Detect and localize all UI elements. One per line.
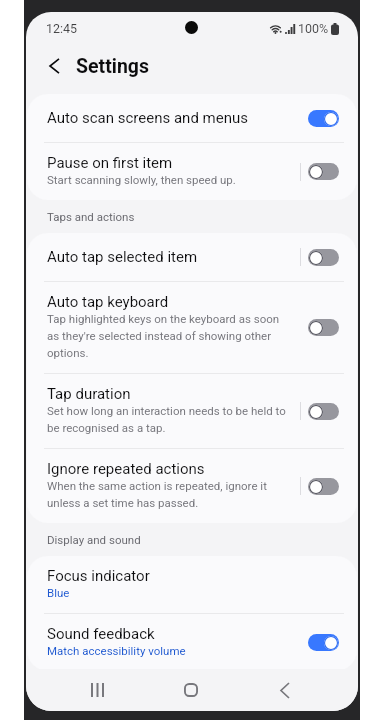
button[interactable]: Off: [308, 319, 339, 336]
button[interactable]: Off: [308, 478, 339, 495]
button[interactable]: Recent apps: [76, 669, 120, 711]
staticText: Tap highlighted keys on the keyboard as …: [47, 310, 288, 361]
button[interactable]: Off: [308, 403, 339, 420]
staticText: Ignore repeated actions: [47, 461, 205, 477]
staticText: Pause on first item: [47, 155, 173, 171]
staticText: Start scanning slowly, then speed up.: [47, 171, 236, 188]
staticText: Set how long an interaction needs to be …: [47, 402, 288, 436]
staticText: Tap duration: [47, 386, 131, 402]
staticText: Focus indicator: [47, 568, 150, 584]
staticText: Auto tap keyboard: [47, 294, 169, 310]
staticText: Taps and actions: [47, 210, 135, 223]
button[interactable]: Auto scan screens and menus: [27, 94, 357, 143]
button[interactable]: Pause on first item: [27, 143, 357, 200]
button[interactable]: Auto tap selected item: [27, 233, 357, 282]
button[interactable]: Sound feedback: [27, 614, 357, 671]
staticText: Settings: [76, 55, 149, 78]
button[interactable]: On: [308, 634, 339, 651]
staticText: 100%: [298, 21, 329, 36]
staticText: Display and sound: [47, 533, 141, 546]
staticText: When the same action is repeated, ignore…: [47, 477, 288, 511]
staticText: 12:45: [46, 21, 78, 36]
staticText: Match accessibility volume: [47, 642, 186, 659]
button[interactable]: Focus indicator: [27, 556, 357, 614]
button[interactable]: Off: [308, 163, 339, 180]
button[interactable]: Navigate up: [38, 50, 70, 82]
staticText: Auto tap selected item: [47, 249, 198, 265]
staticText: Sound feedback: [47, 626, 155, 642]
staticText: Auto scan screens and menus: [47, 110, 248, 126]
button[interactable]: Back: [263, 669, 307, 711]
button[interactable]: Ignore repeated actions: [27, 449, 357, 523]
button[interactable]: Tap duration: [27, 374, 357, 449]
button[interactable]: Home: [169, 669, 213, 711]
button[interactable]: On: [308, 110, 339, 127]
button[interactable]: Off: [308, 249, 339, 266]
button[interactable]: Auto tap keyboard: [27, 282, 357, 374]
staticText: Blue: [47, 584, 70, 601]
